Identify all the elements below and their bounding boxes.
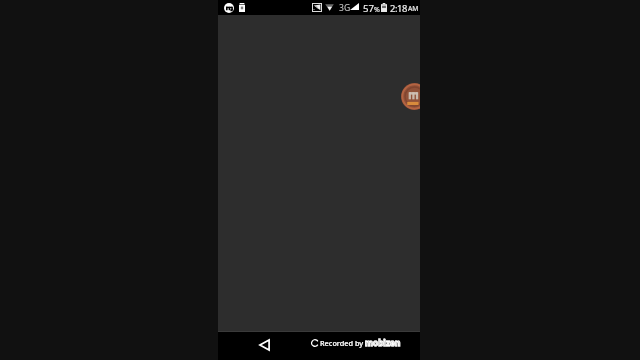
staticText: mobizen xyxy=(365,337,401,348)
button[interactable]: Back xyxy=(253,334,275,356)
staticText: 3G xyxy=(339,2,351,14)
staticText: 57 xyxy=(363,2,374,15)
staticText: AM xyxy=(408,4,419,13)
staticText: % xyxy=(374,5,380,15)
staticText: Recorded by xyxy=(320,338,364,348)
button[interactable]: Mobizen recorder xyxy=(401,83,420,110)
staticText: 2:18 xyxy=(390,2,407,15)
